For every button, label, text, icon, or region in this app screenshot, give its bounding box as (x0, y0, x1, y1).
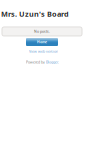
button[interactable]: Home (26, 38, 58, 46)
staticText: Blogger. (46, 60, 59, 64)
button[interactable]: View web version (29, 49, 58, 54)
staticText: View web version (29, 49, 58, 54)
staticText: Powered by (26, 60, 45, 64)
staticText: Home (37, 40, 47, 44)
staticText: No posts. (34, 29, 50, 34)
staticText: Mrs. Uzun's Board (1, 9, 69, 19)
button[interactable]: Blogger. (46, 60, 59, 64)
